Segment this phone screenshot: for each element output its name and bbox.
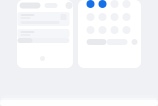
button[interactable]: Inbox screenshot [17, 0, 73, 68]
button[interactable]: Gallery screenshot [78, 0, 141, 68]
